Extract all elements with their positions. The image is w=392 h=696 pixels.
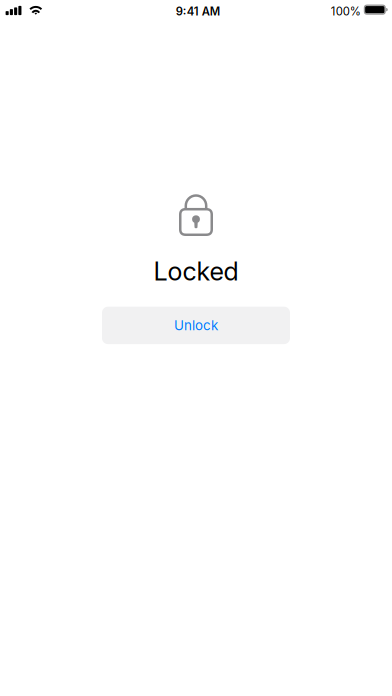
button[interactable]: Unlock <box>102 307 290 344</box>
staticText: 100% <box>331 4 361 18</box>
staticText: 9:41 AM <box>176 4 220 18</box>
staticText: Locked <box>153 256 238 287</box>
staticText: Unlock <box>174 317 218 333</box>
